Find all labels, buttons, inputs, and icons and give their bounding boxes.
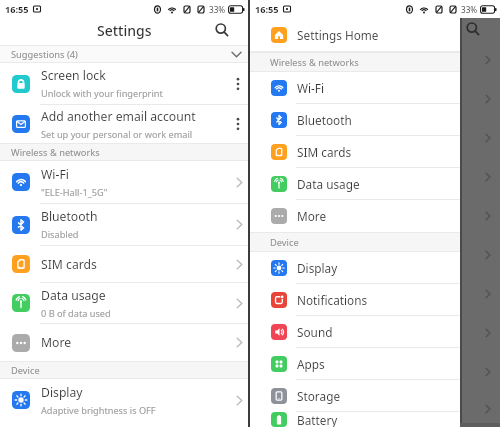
staticText: Data usage xyxy=(41,287,106,304)
staticText: Wireless & networks xyxy=(11,146,100,159)
staticText: SIM cards xyxy=(297,144,352,160)
button[interactable]: Screen lock xyxy=(0,63,248,104)
staticText: Unlock with your fingerprint xyxy=(41,87,163,100)
button[interactable]: Battery xyxy=(250,412,460,427)
staticText: Wireless & networks xyxy=(270,56,359,69)
button[interactable]: Storage xyxy=(250,380,460,412)
staticText: Settings Home xyxy=(297,27,379,43)
staticText: Suggestions (4) xyxy=(11,48,78,61)
staticText: Wi-Fi xyxy=(41,166,69,183)
staticText: Bluetooth xyxy=(297,112,352,128)
button[interactable]: Settings Home xyxy=(250,18,460,52)
button[interactable]: Suggestions (4) xyxy=(0,46,248,63)
staticText: "ELE-Hall-1_5G" xyxy=(41,186,108,199)
staticText: Bluetooth xyxy=(41,208,98,225)
button[interactable]: Display xyxy=(0,379,248,421)
staticText: Data usage xyxy=(297,176,360,192)
staticText: 16:55 xyxy=(255,3,279,16)
staticText: Disabled xyxy=(41,228,79,241)
staticText: 33% xyxy=(209,4,226,15)
button[interactable] xyxy=(215,23,229,37)
button[interactable]: SIM cards xyxy=(0,246,248,282)
staticText: Display xyxy=(297,260,338,276)
button[interactable]: Wi-Fi xyxy=(0,161,248,203)
staticText: 0 B of data used xyxy=(41,307,111,320)
button[interactable]: More xyxy=(250,200,460,232)
staticText: Settings xyxy=(97,21,152,40)
staticText: Screen lock xyxy=(41,67,106,84)
button[interactable]: SIM cards xyxy=(250,136,460,168)
button[interactable]: Data usage xyxy=(250,168,460,200)
staticText: SIM cards xyxy=(41,256,97,273)
staticText: Set up your personal or work email xyxy=(41,128,193,141)
button[interactable]: More xyxy=(0,324,248,361)
staticText: 16:55 xyxy=(5,3,29,16)
button[interactable]: Bluetooth xyxy=(0,204,248,245)
staticText: Add another email account xyxy=(41,108,196,125)
staticText: Device xyxy=(11,364,40,377)
staticText: Wi-Fi xyxy=(297,80,324,96)
button[interactable]: Notifications xyxy=(250,284,460,316)
staticText: Storage xyxy=(297,388,341,404)
staticText: Apps xyxy=(297,356,325,372)
button[interactable]: Wi-Fi xyxy=(250,72,460,104)
button[interactable]: Apps xyxy=(250,348,460,380)
button[interactable]: Add another email account xyxy=(0,105,248,143)
staticText: More xyxy=(297,208,327,224)
staticText: More xyxy=(41,334,72,351)
staticText: Device xyxy=(270,236,299,249)
staticText: Notifications xyxy=(297,292,368,308)
staticText: Sound xyxy=(297,324,333,340)
staticText: Display xyxy=(41,384,83,401)
button[interactable]: Data usage xyxy=(0,283,248,323)
button[interactable]: Display xyxy=(250,252,460,284)
staticText: Adaptive brightness is OFF xyxy=(41,404,156,417)
button[interactable]: Bluetooth xyxy=(250,104,460,136)
staticText: 33% xyxy=(461,4,478,15)
button[interactable]: Sound xyxy=(250,316,460,348)
staticText: Battery xyxy=(297,412,338,427)
